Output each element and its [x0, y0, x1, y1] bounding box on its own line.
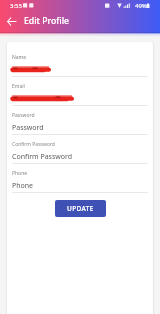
button[interactable]: Confirm Password — [7, 135, 153, 164]
button[interactable]: Password — [7, 106, 153, 135]
staticText: Confirm Password — [12, 141, 55, 148]
staticText: UPDATE — [67, 204, 94, 213]
staticText: Name — [12, 54, 27, 61]
staticText: 49% — [135, 2, 147, 10]
button[interactable]: Phone — [7, 164, 153, 193]
staticText: Confirm Password — [12, 152, 73, 162]
button[interactable]: Email — [7, 77, 153, 106]
staticText: Password — [12, 112, 35, 119]
staticText: Edit Profile — [24, 15, 70, 27]
button[interactable]: Name — [7, 48, 153, 77]
staticText: Email — [12, 83, 25, 90]
button[interactable]: UPDATE — [55, 200, 106, 217]
staticText: Phone — [12, 170, 28, 177]
button[interactable]: Back — [0, 11, 22, 31]
staticText: Password — [12, 123, 44, 133]
staticText: 3:55 — [10, 2, 22, 10]
staticText: Phone — [12, 181, 34, 191]
